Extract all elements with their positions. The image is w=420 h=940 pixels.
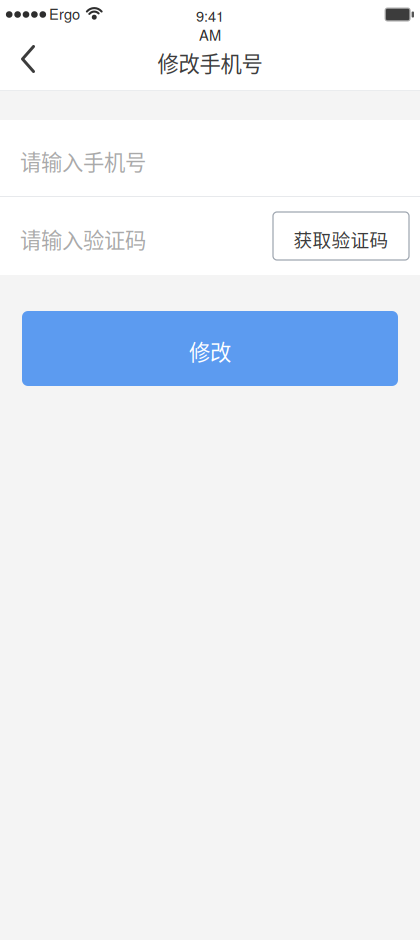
staticText: 请输入验证码 <box>20 224 146 254</box>
button[interactable]: 请输入手机号 <box>0 120 420 196</box>
staticText: 请输入手机号 <box>20 146 146 176</box>
staticText: 9:41 <box>196 5 224 26</box>
staticText: 修改手机号 <box>157 47 262 78</box>
staticText: AM <box>199 24 221 45</box>
button[interactable]: Back <box>0 44 53 90</box>
staticText: Ergo <box>49 3 80 24</box>
staticText: 修改 <box>189 336 231 366</box>
staticText: 获取验证码 <box>293 225 388 252</box>
button[interactable]: 修改 <box>0 311 420 386</box>
button[interactable]: 获取验证码 <box>273 212 409 260</box>
